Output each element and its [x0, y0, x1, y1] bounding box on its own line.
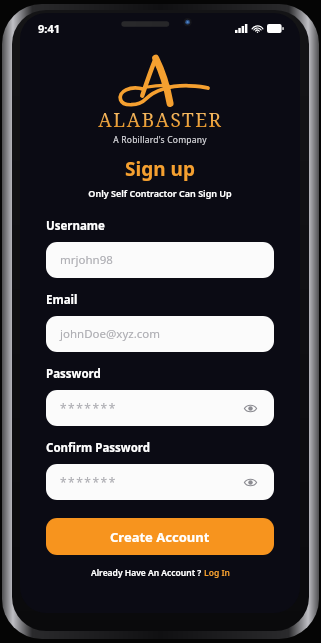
staticText: johnDoe@xyz.com	[60, 326, 160, 342]
staticText: Only Self Contractor Can Sign Up	[20, 187, 300, 199]
staticText: mrjohn98	[60, 252, 113, 268]
staticText: *******	[60, 474, 117, 490]
staticText: Email	[46, 292, 78, 308]
staticText: Create Account	[110, 528, 210, 546]
staticText: 9:41	[38, 21, 60, 36]
button[interactable]: Show password	[240, 472, 260, 492]
button[interactable]: mrjohn98	[46, 242, 274, 278]
button[interactable]: Show password	[240, 398, 260, 418]
staticText: ALABASTER	[98, 107, 223, 133]
staticText: Username	[46, 218, 105, 234]
staticText: Sign up	[20, 156, 300, 182]
button[interactable]: Create Account	[46, 518, 274, 555]
button[interactable]: Log In	[204, 567, 230, 579]
button[interactable]: *******	[46, 390, 274, 426]
button[interactable]: johnDoe@xyz.com	[46, 316, 274, 352]
button[interactable]: *******	[46, 464, 274, 500]
staticText: *******	[60, 400, 117, 416]
staticText: Log In	[204, 567, 230, 579]
staticText: Password	[46, 366, 101, 382]
staticText: Already Have An Account ?	[91, 567, 204, 579]
staticText: A Robillard's Company	[113, 134, 207, 146]
staticText: Confirm Password	[46, 440, 151, 456]
